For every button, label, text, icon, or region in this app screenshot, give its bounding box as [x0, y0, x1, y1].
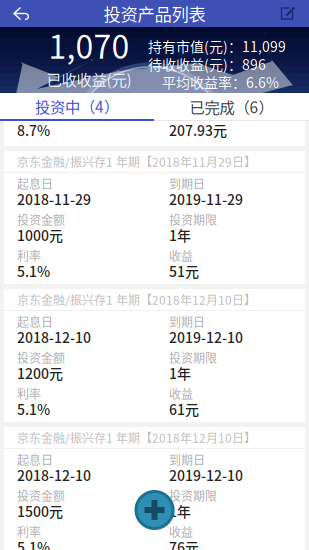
staticText: 平均收益率：6.6% — [148, 72, 279, 92]
staticText: 已完成（6） — [189, 95, 273, 118]
staticText: 持有市值(元)：11,099 — [148, 36, 286, 56]
staticText: 2018-12-10 — [17, 327, 91, 347]
staticText: 待收收益(元)：896 — [148, 54, 266, 74]
staticText: 2018-12-10 — [17, 465, 91, 485]
staticText: 8.7% — [17, 120, 50, 140]
staticText: 起息日 — [17, 313, 53, 330]
staticText: 投资期限 — [169, 487, 217, 504]
staticText: 收益 — [169, 385, 193, 402]
staticText: 已收收益(元) — [46, 68, 131, 90]
staticText: 利率 — [17, 385, 41, 402]
staticText: 到期日 — [169, 451, 205, 468]
staticText: 1年 — [169, 501, 191, 521]
staticText: 2019-12-10 — [169, 327, 243, 347]
staticText: 收益 — [169, 247, 193, 264]
staticText: 1500元 — [17, 501, 63, 521]
staticText: 到期日 — [169, 175, 205, 192]
button[interactable]: Back — [6, 0, 36, 27]
staticText: 投资金额 — [17, 211, 65, 228]
button[interactable]: 已完成（6） — [154, 93, 309, 121]
staticText: 207.93元 — [169, 120, 227, 140]
button[interactable]: 京东金融/振兴存1 年期【2018年11月29日】 — [4, 151, 305, 284]
staticText: 5.1% — [17, 399, 50, 419]
staticText: 1,070 — [48, 22, 129, 68]
staticText: 京东金融/振兴存1 年期【2018年11月29日】 — [17, 153, 256, 170]
button[interactable]: 京东金融/振兴存1 年期【2018年12月10日】 — [4, 427, 305, 550]
staticText: 2018-11-29 — [17, 189, 91, 209]
staticText: 起息日 — [17, 451, 53, 468]
staticText: 京东金融/振兴存1 年期【2018年12月10日】 — [17, 429, 256, 446]
staticText: 投资金额 — [17, 487, 65, 504]
staticText: 利率 — [17, 523, 41, 540]
staticText: 起息日 — [17, 175, 53, 192]
staticText: 投资期限 — [169, 211, 217, 228]
staticText: 1年 — [169, 225, 191, 245]
staticText: 2019-12-10 — [169, 465, 243, 485]
staticText: 2019-11-29 — [169, 189, 243, 209]
button[interactable]: 京东金融/振兴存1 年期【2018年12月10日】 — [4, 289, 305, 422]
staticText: 投资金额 — [17, 349, 65, 366]
button[interactable]: Compose — [273, 0, 303, 27]
staticText: 1200元 — [17, 363, 63, 383]
staticText: 76元 — [169, 537, 199, 550]
staticText: 5.1% — [17, 537, 50, 550]
staticText: 61元 — [169, 399, 199, 419]
button[interactable]: Add investment — [134, 490, 174, 530]
staticText: 投资产品列表 — [103, 1, 205, 26]
staticText: 到期日 — [169, 313, 205, 330]
staticText: 收益 — [169, 523, 193, 540]
staticText: 1年 — [169, 363, 191, 383]
staticText: 投资期限 — [169, 349, 217, 366]
button[interactable]: 投资中（4） — [0, 93, 154, 121]
staticText: 利率 — [17, 247, 41, 264]
staticText: 投资中（4） — [35, 95, 119, 117]
staticText: 京东金融/振兴存1 年期【2018年12月10日】 — [17, 291, 256, 308]
staticText: 1000元 — [17, 225, 63, 245]
staticText: 5.1% — [17, 261, 50, 281]
staticText: 51元 — [169, 261, 199, 281]
